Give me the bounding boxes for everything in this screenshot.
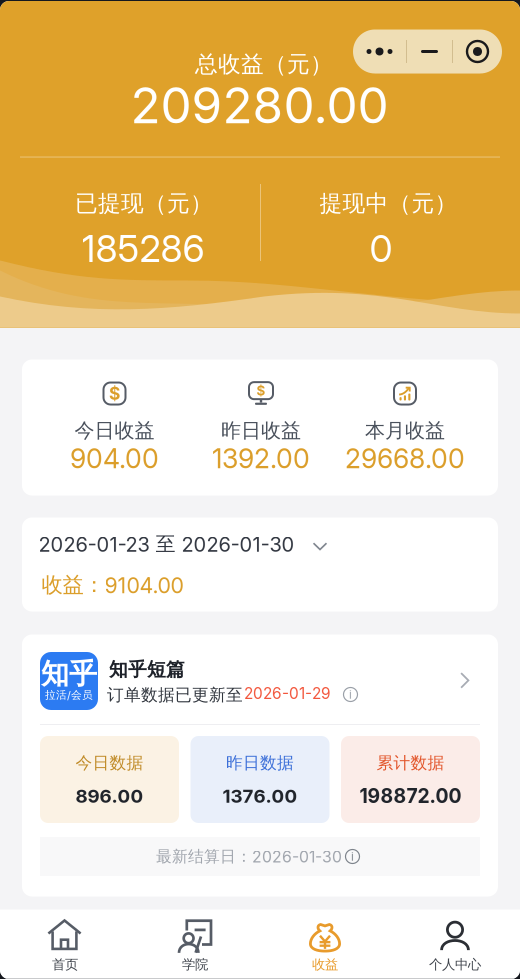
staticText: 昨日收益 <box>221 418 301 443</box>
staticText: 896.00 <box>75 785 143 807</box>
staticText: $ <box>256 383 265 399</box>
staticText: 个人中心 <box>429 956 481 973</box>
staticText: i <box>349 687 352 701</box>
staticText: 本月收益 <box>365 418 445 443</box>
staticText: i <box>351 849 354 863</box>
staticText: 最新结算日：2026-01-30 <box>156 847 342 866</box>
staticText: 累计数据 <box>376 752 444 773</box>
staticText: 209280.00 <box>130 75 388 135</box>
staticText: 总收益（元） <box>195 50 333 79</box>
staticText: 0 <box>369 226 392 271</box>
staticText: 订单数据已更新至 <box>107 684 243 705</box>
staticText: 今日收益 <box>74 418 154 443</box>
staticText: 收益 <box>312 956 338 973</box>
staticText: 今日数据 <box>75 752 143 773</box>
staticText: $ <box>109 383 120 404</box>
staticText: 知乎短篇 <box>109 658 185 681</box>
staticText: 185286 <box>81 226 204 271</box>
staticText: 知乎 <box>41 656 97 692</box>
staticText: 1376.00 <box>222 785 297 807</box>
staticText: 2026-01-23 至 2026-01-30 <box>38 531 294 557</box>
staticText: 2026-01-29 <box>244 684 331 703</box>
staticText: 首页 <box>52 956 78 973</box>
button[interactable]: 收益 <box>260 909 390 978</box>
button[interactable]: 首页 <box>0 909 130 978</box>
staticText: 拉活/会员 <box>45 688 93 702</box>
staticText: 学院 <box>182 956 208 973</box>
button[interactable]: 学院 <box>130 909 260 978</box>
button[interactable]: 知乎 <box>22 634 498 724</box>
staticText: 收益：9104.00 <box>41 572 183 598</box>
staticText: 29668.00 <box>345 442 465 475</box>
button[interactable]: 2026-01-23 至 2026-01-30 <box>22 517 498 611</box>
button[interactable]: More <box>353 29 406 73</box>
staticText: 昨日数据 <box>226 752 294 773</box>
staticText: 1392.00 <box>212 442 310 475</box>
staticText: 已提现（元） <box>75 189 213 218</box>
button[interactable]: Minimize <box>407 29 452 73</box>
staticText: 198872.00 <box>359 784 461 808</box>
staticText: 904.00 <box>70 442 159 475</box>
button[interactable]: 个人中心 <box>390 909 520 978</box>
button[interactable]: Close <box>453 29 502 73</box>
staticText: 提现中（元） <box>319 189 457 218</box>
